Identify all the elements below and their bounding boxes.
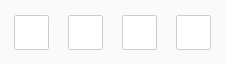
button[interactable]: Checkbox 1 — [14, 15, 49, 50]
button[interactable]: Checkbox 4 — [176, 15, 211, 50]
button[interactable]: Checkbox 3 — [122, 15, 157, 50]
button[interactable]: Checkbox 2 — [68, 15, 103, 50]
